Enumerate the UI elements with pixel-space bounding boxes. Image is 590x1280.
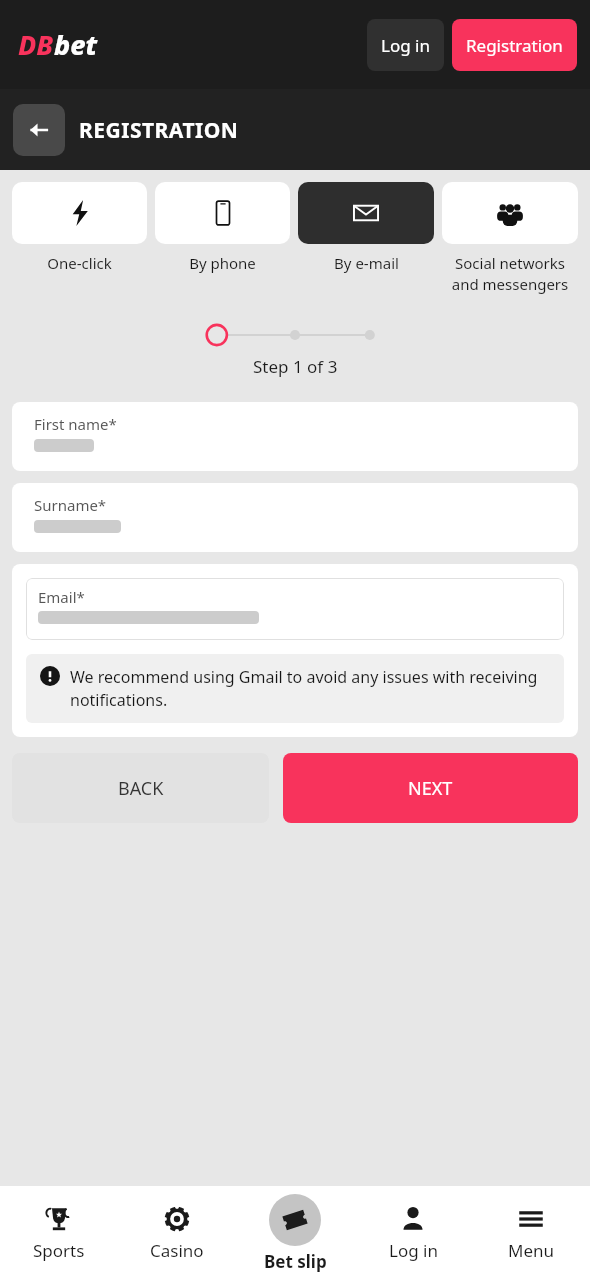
staticText: By phone [189,253,256,273]
staticText: BACK [118,776,164,801]
button[interactable]: Surname* [12,483,578,552]
button[interactable]: Social networks and messengers [442,182,578,295]
staticText: bet [54,26,98,63]
staticText: Log in [381,34,430,57]
button[interactable]: Sports [0,1186,118,1280]
button[interactable]: NEXT [283,753,578,823]
button[interactable]: Casino [118,1186,236,1280]
staticText: We recommend using Gmail to avoid any is… [70,666,550,711]
staticText: Registration [466,34,563,57]
button[interactable]: Registration [452,19,577,71]
staticText: Surname* [34,495,107,515]
staticText: REGISTRATION [79,116,239,145]
staticText: DB [18,26,54,63]
staticText: One-click [47,253,112,273]
staticText: NEXT [408,776,453,801]
staticText: Step 1 of 3 [253,355,338,378]
staticText: First name* [34,414,117,434]
button[interactable]: Menu [472,1186,590,1280]
staticText: Social networks and messengers [442,253,578,295]
staticText: Bet slip [264,1250,327,1273]
button[interactable]: Back [13,104,65,156]
button[interactable]: Email* [26,578,564,640]
staticText: By e-mail [334,253,399,273]
button[interactable]: BACK [12,753,269,823]
staticText: Casino [150,1239,204,1262]
button[interactable]: By phone [155,182,290,273]
button[interactable]: Log in [367,19,444,71]
staticText: Menu [508,1239,555,1262]
button[interactable]: First name* [12,402,578,471]
button[interactable]: One-click [12,182,147,273]
staticText: Sports [33,1239,85,1262]
button[interactable]: Bet slip [236,1186,354,1280]
button[interactable]: By e-mail [298,182,434,273]
staticText: Email* [38,587,85,607]
staticText: Log in [389,1239,438,1262]
button[interactable]: Log in [354,1186,472,1280]
button[interactable]: DB [18,26,98,63]
